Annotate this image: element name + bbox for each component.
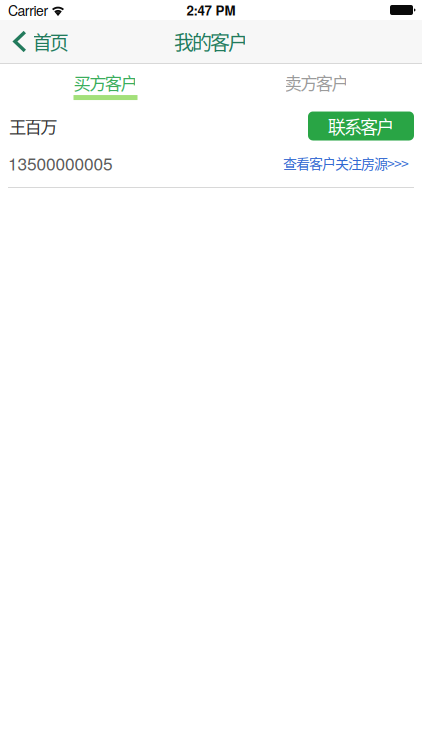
button[interactable]: 查看客户关注房源>>> bbox=[283, 153, 409, 173]
staticText: 查看客户关注房源>>> bbox=[283, 153, 409, 173]
staticText: 13500000005 bbox=[8, 151, 113, 175]
staticText: Carrier bbox=[8, 0, 48, 20]
staticText: 首页 bbox=[32, 27, 68, 55]
button[interactable]: 首页 bbox=[0, 21, 76, 61]
staticText: 王百万 bbox=[9, 113, 57, 139]
staticText: 2:47 PM bbox=[186, 0, 235, 20]
staticText: 卖方客户 bbox=[285, 70, 348, 95]
staticText: 买方客户 bbox=[74, 70, 137, 95]
button[interactable]: 联系客户 bbox=[308, 111, 414, 140]
staticText: 联系客户 bbox=[328, 113, 394, 139]
button[interactable]: 卖方客户 bbox=[211, 64, 422, 106]
staticText: 我的客户 bbox=[174, 27, 248, 56]
button[interactable]: 买方客户 bbox=[0, 64, 211, 106]
